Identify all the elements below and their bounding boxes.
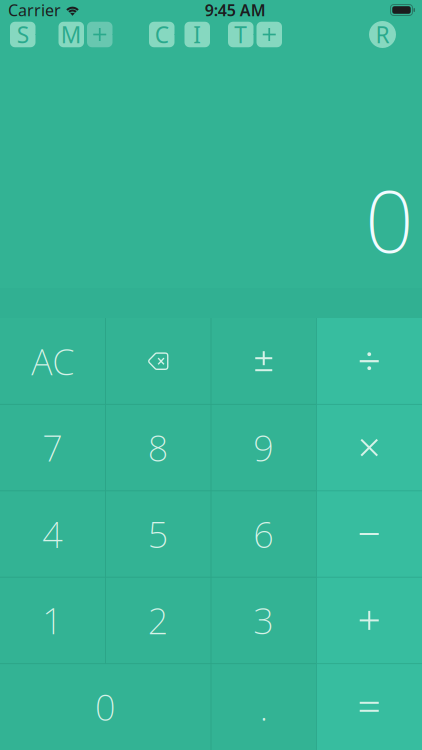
button[interactable]: Delete	[105, 318, 211, 404]
button[interactable]: Minus	[316, 491, 422, 577]
button[interactable]: 3	[211, 577, 316, 664]
button[interactable]: .	[211, 664, 316, 750]
button[interactable]: S	[10, 22, 35, 47]
staticText: S	[17, 19, 29, 49]
button[interactable]: Multiply	[316, 404, 422, 491]
staticText: Carrier	[8, 0, 61, 21]
staticText: 7	[42, 424, 63, 471]
staticText: 5	[148, 510, 169, 558]
button[interactable]: 0	[0, 664, 211, 750]
button[interactable]: Memory add	[87, 22, 112, 47]
button[interactable]: T	[228, 22, 253, 47]
button[interactable]: Plus	[316, 577, 422, 664]
staticText: T	[234, 19, 247, 49]
staticText: 4	[42, 510, 63, 558]
button[interactable]: Plus or minus	[211, 318, 316, 404]
button[interactable]: I	[184, 22, 210, 47]
button[interactable]: M	[58, 22, 84, 47]
button[interactable]: Tax add	[256, 22, 282, 47]
staticText: I	[193, 19, 201, 49]
button[interactable]: Equals	[316, 664, 422, 750]
button[interactable]: 5	[105, 491, 211, 577]
button[interactable]: C	[149, 22, 174, 47]
button[interactable]: 1	[0, 577, 105, 664]
staticText: 9:45 AM	[205, 0, 266, 21]
button[interactable]: 6	[211, 491, 316, 577]
staticText: 1	[42, 596, 63, 644]
staticText: 0	[95, 683, 116, 731]
staticText: 9	[253, 424, 274, 471]
staticText: 0	[365, 163, 414, 276]
staticText: R	[375, 19, 389, 49]
button[interactable]: 8	[105, 404, 211, 491]
button[interactable]: Divide	[316, 318, 422, 404]
button[interactable]: 7	[0, 404, 105, 491]
staticText: C	[155, 19, 169, 49]
staticText: 8	[148, 424, 169, 471]
button[interactable]: 9	[211, 404, 316, 491]
button[interactable]: AC	[0, 318, 105, 404]
staticText: 3	[253, 596, 274, 644]
button[interactable]: R	[369, 21, 396, 48]
staticText: AC	[31, 337, 74, 385]
staticText: .	[260, 683, 268, 731]
staticText: M	[61, 19, 82, 49]
staticText: 6	[253, 510, 274, 558]
button[interactable]: 2	[105, 577, 211, 664]
staticText: 2	[148, 596, 169, 644]
button[interactable]: 4	[0, 491, 105, 577]
